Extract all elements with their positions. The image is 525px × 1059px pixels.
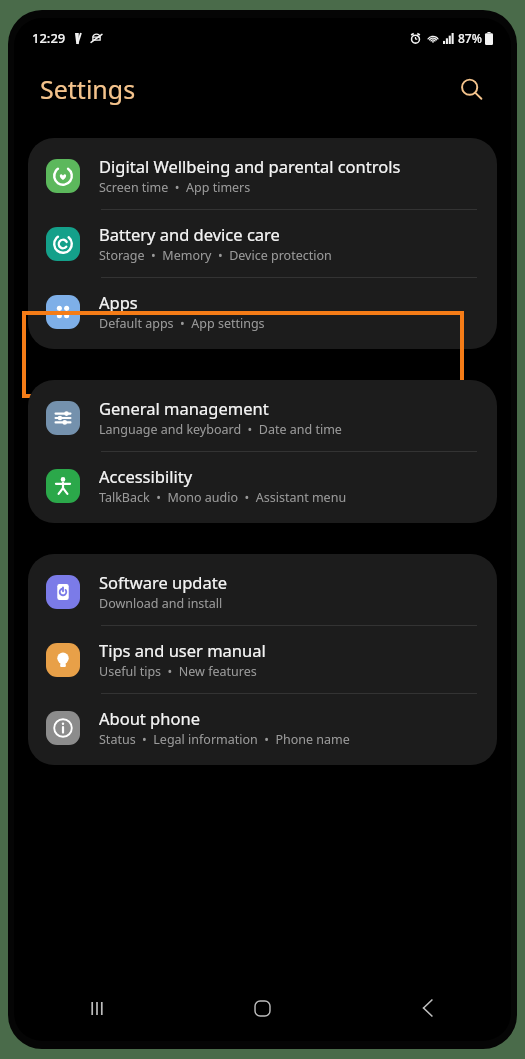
button[interactable]: Accessibility bbox=[28, 452, 497, 519]
staticText: Language and keyboard • Date and time bbox=[99, 421, 342, 438]
button[interactable]: Digital Wellbeing and parental controls bbox=[28, 142, 497, 209]
button[interactable]: Recents bbox=[14, 975, 179, 1041]
staticText: Settings bbox=[40, 72, 136, 106]
staticText: 87% bbox=[458, 30, 482, 46]
button[interactable]: General management bbox=[28, 384, 497, 451]
staticText: About phone bbox=[99, 707, 200, 729]
staticText: TalkBack • Mono audio • Assistant menu bbox=[99, 489, 347, 506]
button[interactable]: Battery and device care bbox=[28, 210, 497, 277]
button[interactable]: Software update bbox=[28, 558, 497, 625]
staticText: Software update bbox=[99, 571, 227, 593]
staticText: Apps bbox=[99, 291, 138, 313]
staticText: Digital Wellbeing and parental controls bbox=[99, 155, 401, 177]
staticText: Battery and device care bbox=[99, 223, 280, 245]
staticText: 12:29 bbox=[32, 29, 66, 47]
staticText: Default apps • App settings bbox=[99, 315, 265, 332]
button[interactable]: Tips and user manual bbox=[28, 626, 497, 693]
staticText: Screen time • App timers bbox=[99, 179, 251, 196]
button[interactable]: Apps bbox=[28, 278, 497, 345]
button[interactable]: About phone bbox=[28, 694, 497, 761]
staticText: Tips and user manual bbox=[99, 639, 266, 661]
button[interactable]: Home bbox=[179, 975, 345, 1041]
staticText: Status • Legal information • Phone name bbox=[99, 731, 350, 748]
button[interactable]: Back bbox=[345, 975, 511, 1041]
staticText: Storage • Memory • Device protection bbox=[99, 247, 332, 264]
staticText: Useful tips • New features bbox=[99, 663, 257, 680]
staticText: Accessibility bbox=[99, 465, 193, 487]
staticText: Download and install bbox=[99, 595, 223, 612]
staticText: General management bbox=[99, 397, 269, 419]
button[interactable]: Search bbox=[449, 67, 493, 111]
